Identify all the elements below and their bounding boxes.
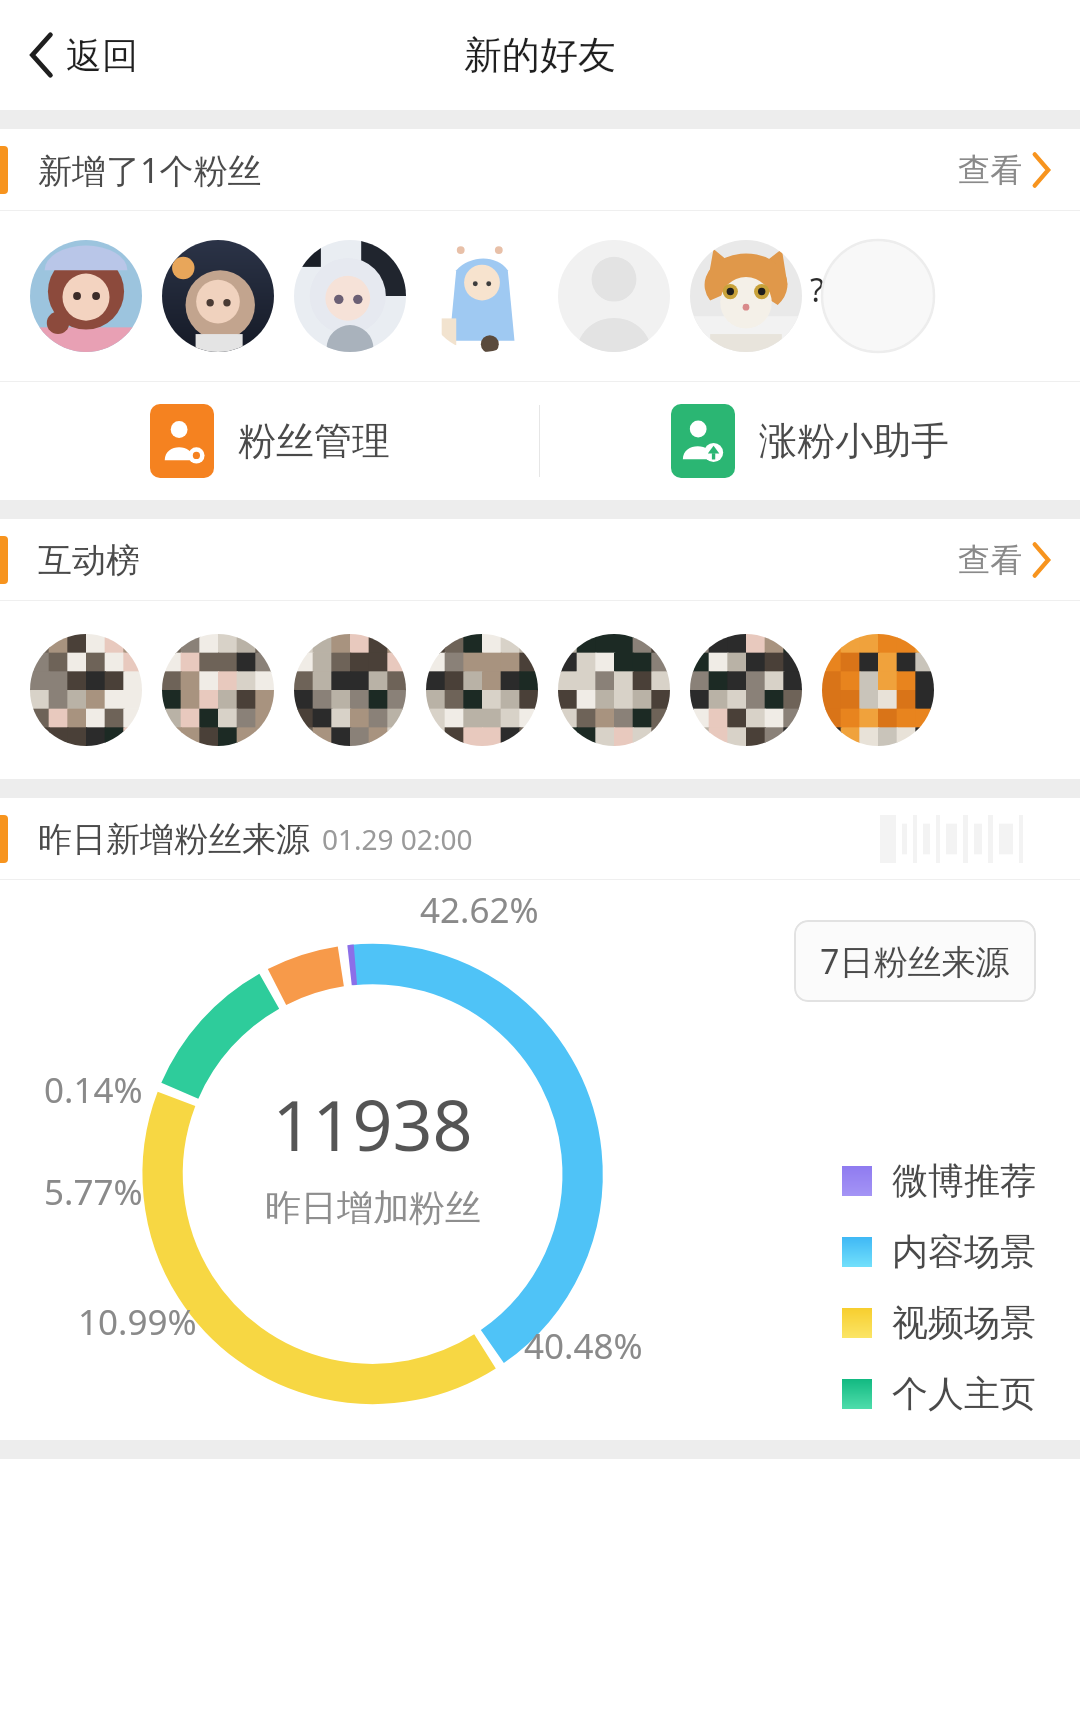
button[interactable]: Ranked fan	[690, 634, 802, 746]
button[interactable]: 查看	[958, 519, 1080, 601]
button[interactable]: Fan avatar	[558, 240, 670, 352]
staticText: 11938	[272, 1076, 473, 1171]
button[interactable]: Ranked fan	[822, 634, 934, 746]
staticText: 涨粉小助手	[759, 417, 949, 465]
staticText: 5.77%	[44, 1168, 143, 1216]
staticText: 7日粉丝来源	[820, 938, 1010, 984]
staticText: 10.99%	[78, 1298, 197, 1346]
button[interactable]: Fan avatar	[294, 240, 406, 352]
button[interactable]: Ranked fan	[426, 634, 538, 746]
button[interactable]: Fan avatar	[30, 240, 142, 352]
staticText: ?	[810, 268, 824, 312]
button[interactable]: Fan avatar	[822, 240, 934, 352]
button[interactable]: 互动榜	[0, 519, 1080, 601]
staticText: 查看	[958, 540, 1022, 580]
staticText: 微博推荐	[892, 1158, 1036, 1203]
button[interactable]: Fan avatar	[162, 240, 274, 352]
button[interactable]: Ranked fan	[294, 634, 406, 746]
staticText: 新的好友	[464, 31, 616, 79]
button[interactable]: 个人主页	[842, 1371, 1036, 1416]
staticText: 返回	[66, 33, 138, 78]
button[interactable]: 微博推荐	[842, 1158, 1036, 1203]
staticText: 内容场景	[892, 1229, 1036, 1274]
staticText: 昨日新增粉丝来源	[38, 818, 310, 861]
staticText: 01.29 02:00	[322, 820, 473, 858]
button[interactable]: 内容场景	[842, 1229, 1036, 1274]
staticText: 个人主页	[892, 1371, 1036, 1416]
button[interactable]: Ranked fan	[30, 634, 142, 746]
staticText: 粉丝管理	[238, 417, 390, 465]
button[interactable]: Ranked fan	[558, 634, 670, 746]
button[interactable]: 新增了1个粉丝	[0, 129, 1080, 211]
staticText: 40.48%	[524, 1322, 643, 1370]
staticText: 互动榜	[38, 539, 140, 582]
button[interactable]: 涨粉小助手	[540, 382, 1080, 500]
staticText: 新增了1个粉丝	[38, 147, 262, 193]
staticText: 昨日增加粉丝	[265, 1185, 481, 1230]
button[interactable]: Fan avatar	[426, 240, 538, 352]
button[interactable]: Fan avatar	[690, 240, 802, 352]
button[interactable]: 7日粉丝来源	[794, 920, 1036, 1002]
staticText: 0.14%	[44, 1066, 143, 1114]
button[interactable]: 查看	[958, 129, 1080, 211]
button[interactable]: Ranked fan	[162, 634, 274, 746]
staticText: 视频场景	[892, 1300, 1036, 1345]
button[interactable]: 视频场景	[842, 1300, 1036, 1345]
staticText: 42.62%	[420, 886, 539, 934]
button[interactable]: 粉丝管理	[0, 382, 539, 500]
button[interactable]: Back	[0, 0, 162, 110]
other: Back	[30, 33, 54, 77]
staticText: 查看	[958, 150, 1022, 190]
button[interactable]: 昨日新增粉丝来源	[0, 798, 1080, 880]
